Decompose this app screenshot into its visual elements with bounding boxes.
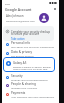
staticText: Alex Johnson bbox=[6, 14, 24, 18]
staticText: Take action bbox=[11, 37, 25, 41]
button[interactable]: Complete your security checkup to secure… bbox=[3, 26, 54, 41]
staticText: Your payment info and subscriptions bbox=[11, 95, 55, 98]
button[interactable]: Payments bbox=[2, 90, 59, 99]
button[interactable]: Close bbox=[53, 7, 57, 11]
button[interactable]: Galaxy A5 bbox=[3, 57, 55, 72]
staticText: Payments bbox=[11, 91, 26, 95]
staticText: Key privacy options bbox=[11, 54, 34, 57]
staticText: Security bbox=[11, 74, 23, 78]
button[interactable]: Security bbox=[2, 73, 59, 82]
staticText: Data & privacy bbox=[11, 50, 33, 54]
staticText: 9:30 bbox=[5, 2, 10, 5]
staticText: alexjohnson@gmail.com bbox=[6, 19, 35, 22]
button[interactable]: People & sharing bbox=[2, 81, 59, 90]
button[interactable]: Personal info bbox=[2, 40, 59, 49]
staticText: Complete your security checkup to secure… bbox=[11, 30, 52, 36]
staticText: Galaxy A5 bbox=[13, 61, 27, 65]
staticText: People & sharing bbox=[11, 82, 36, 86]
staticText: Review a signed-in device. Review now to… bbox=[13, 65, 53, 71]
staticText: Personal info bbox=[11, 41, 31, 45]
staticText: Settings and recommendations bbox=[11, 78, 48, 81]
button[interactable]: Google Account profile picture bbox=[39, 13, 49, 23]
staticText: Google Account bbox=[5, 7, 32, 12]
button[interactable]: Data & privacy bbox=[2, 49, 59, 58]
staticText: Info about you and your preferences bbox=[11, 45, 55, 48]
staticText: Manage your contacts bbox=[11, 86, 38, 89]
